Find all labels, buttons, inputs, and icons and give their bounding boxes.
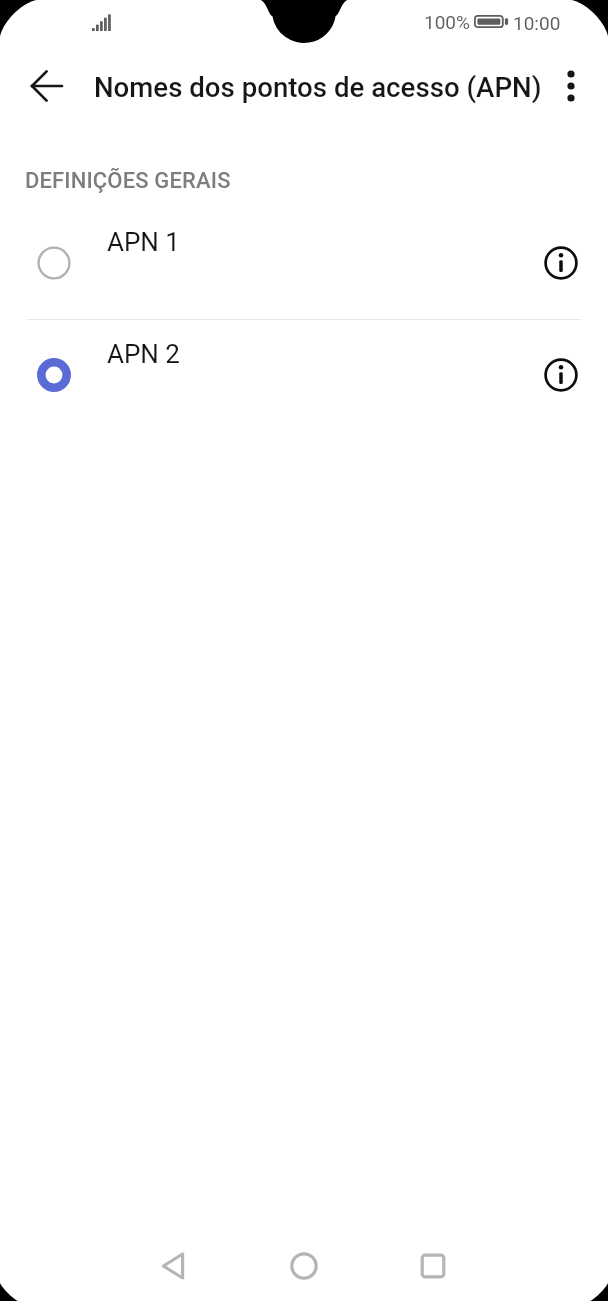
button[interactable]: More options [547,62,595,110]
button[interactable]: About APN 1 [533,235,589,291]
button[interactable]: Navigate up [23,62,71,110]
button[interactable] [0,208,608,319]
staticText: DEFINIÇÕES GERAIS [25,168,231,194]
button[interactable] [0,320,608,431]
button[interactable]: Selected APN 2 [26,347,82,403]
staticText: 10:00 [513,12,561,34]
staticText: APN 2 [107,339,180,369]
button[interactable]: Recent apps [403,1236,463,1296]
staticText: Nomes dos pontos de acesso (APN) [94,71,542,103]
button[interactable]: Home [274,1236,334,1296]
staticText: 100% [424,11,470,33]
button[interactable]: About APN 2 [533,347,589,403]
button[interactable]: APN 1 [26,235,82,291]
button[interactable]: Back [143,1236,203,1296]
staticText: APN 1 [107,227,180,257]
